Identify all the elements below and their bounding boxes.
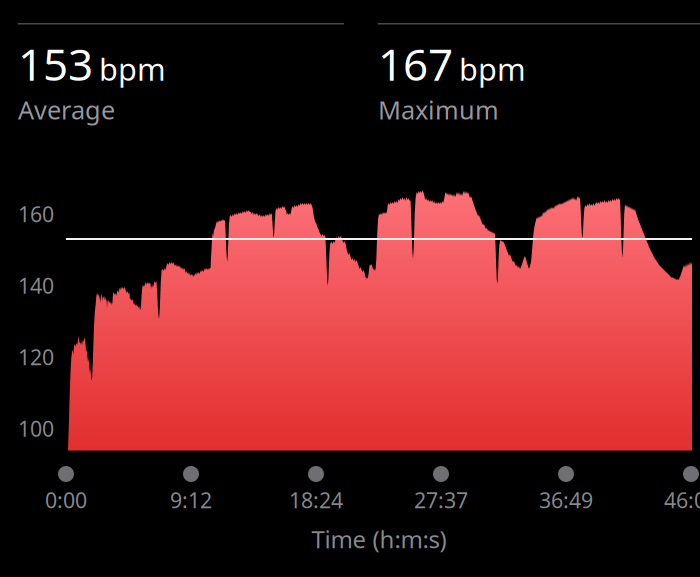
- staticText: 36:49: [539, 486, 593, 514]
- staticText: 18:24: [289, 486, 343, 514]
- staticText: Average: [18, 93, 115, 126]
- staticText: 46:01: [664, 486, 700, 514]
- staticText: 140: [18, 271, 54, 300]
- staticText: 0:00: [45, 486, 87, 514]
- staticText: 27:37: [414, 486, 468, 514]
- staticText: 167: [378, 34, 453, 93]
- staticText: 120: [18, 343, 54, 371]
- staticText: bpm: [459, 48, 526, 89]
- staticText: 153: [18, 34, 93, 93]
- staticText: bpm: [99, 48, 166, 89]
- staticText: Maximum: [378, 93, 499, 126]
- staticText: Time (h:m:s): [311, 523, 446, 555]
- staticText: 100: [18, 414, 54, 443]
- staticText: 160: [18, 200, 54, 228]
- staticText: 9:12: [170, 486, 212, 514]
